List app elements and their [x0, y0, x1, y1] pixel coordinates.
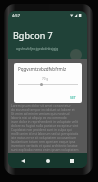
staticText: Ut enim ad minim veniam quis nostrud exe…	[11, 112, 80, 116]
button[interactable]: Home	[39, 153, 57, 168]
staticText: SET	[70, 95, 76, 100]
staticText: inventore veritatis et quasi architecto …	[11, 144, 80, 148]
staticText: Pqgvsmtzvbzdfvbfrmlz	[18, 66, 67, 72]
staticText: 4:57	[12, 13, 20, 18]
staticText: laudantium totam rem aperiam eaque ipsa …	[11, 140, 80, 144]
button[interactable]: Back	[14, 153, 32, 168]
staticText: sunt explicabo nemo enim ipsam voluptate…	[11, 148, 80, 152]
staticText: Bgbcon 7	[13, 29, 53, 41]
staticText: Lorem ipsum dolor sit amet consectetur a…	[11, 104, 80, 108]
staticText: Cupidatat non proident sunt in culpa qui…	[11, 128, 80, 132]
staticText: dolore eu fugiat nulla pariatur excepteu…	[11, 124, 80, 128]
staticText: ogshsvbfjncjgcsbdnksjgjg	[16, 46, 59, 51]
button[interactable]: SET	[66, 93, 78, 103]
button[interactable]: Add	[70, 49, 82, 61]
staticText: 70 g	[42, 77, 49, 81]
staticText: irure dolor in reprehenderit in voluptat…	[11, 120, 80, 124]
staticText: iste natus error sit voluptatem accusant…	[11, 136, 80, 140]
staticText: mollit anim id est laborum sed ut perspi…	[11, 132, 80, 136]
staticText: do eiusmod tempor incididunt ut labore e…	[11, 108, 80, 112]
staticText: laboris nisi ut aliquip ex ea commodo co…	[11, 116, 80, 120]
button[interactable]: Recent apps	[63, 153, 81, 168]
